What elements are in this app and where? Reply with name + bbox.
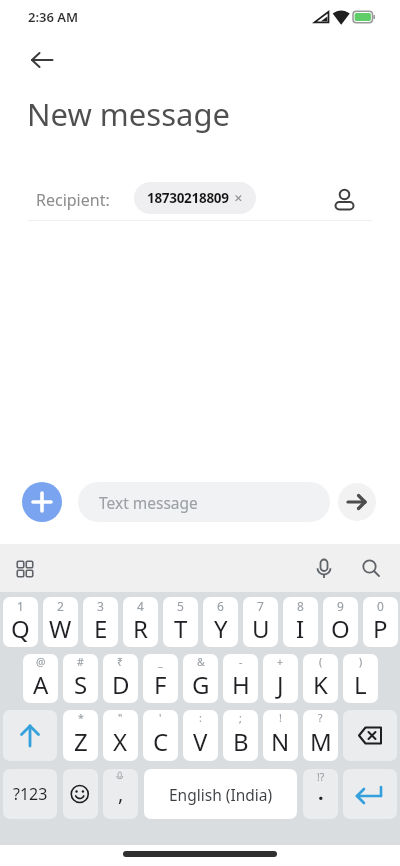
button[interactable]: [9, 553, 41, 585]
staticText: (: [319, 655, 323, 669]
button[interactable]: :: [183, 710, 218, 761]
staticText: S: [74, 668, 88, 701]
button[interactable]: ;: [223, 710, 258, 761]
staticText: ?123: [13, 783, 48, 805]
button[interactable]: ): [343, 654, 378, 703]
staticText: !?: [317, 770, 325, 784]
button[interactable]: [22, 40, 62, 80]
button[interactable]: @: [23, 654, 58, 703]
button[interactable]: ?123: [3, 769, 57, 819]
button[interactable]: 8: [283, 597, 318, 647]
staticText: 0: [377, 598, 384, 614]
staticText: H: [232, 668, 250, 701]
staticText: ;: [239, 711, 242, 725]
button[interactable]: ,: [103, 769, 138, 819]
staticText: L: [354, 668, 367, 701]
button[interactable]: [343, 769, 397, 819]
staticText: ,: [118, 780, 124, 807]
staticText: 1: [17, 598, 24, 614]
button[interactable]: _: [143, 654, 178, 703]
staticText: Q: [11, 612, 30, 645]
staticText: A: [33, 668, 49, 701]
button[interactable]: 5: [163, 597, 198, 647]
button[interactable]: 3: [83, 597, 118, 647]
staticText: M: [310, 725, 332, 758]
button[interactable]: [355, 553, 387, 585]
button[interactable]: 7: [243, 597, 278, 647]
button[interactable]: 2: [43, 597, 78, 647]
staticText: Z: [74, 725, 88, 758]
staticText: T: [174, 612, 188, 645]
staticText: @: [36, 655, 46, 669]
button[interactable]: [63, 769, 98, 819]
button[interactable]: (: [303, 654, 338, 703]
button[interactable]: [331, 181, 359, 209]
staticText: G: [192, 668, 210, 701]
staticText: F: [154, 668, 167, 701]
button[interactable]: #: [63, 654, 98, 703]
button[interactable]: [3, 710, 57, 761]
staticText: ": [118, 711, 123, 725]
button[interactable]: [343, 710, 397, 761]
staticText: R: [133, 612, 148, 645]
staticText: ✕: [234, 192, 243, 204]
staticText: O: [331, 612, 350, 645]
staticText: C: [153, 725, 169, 758]
button[interactable]: &: [183, 654, 218, 703]
staticText: D: [112, 668, 130, 701]
staticText: -: [239, 655, 243, 669]
staticText: :: [199, 711, 202, 725]
staticText: I: [296, 612, 305, 645]
staticText: 5: [177, 598, 184, 614]
button[interactable]: 6: [203, 597, 238, 647]
staticText: E: [94, 612, 108, 645]
staticText: .: [318, 779, 324, 806]
button[interactable]: !: [263, 710, 298, 761]
staticText: J: [277, 668, 284, 701]
button[interactable]: 4: [123, 597, 158, 647]
button[interactable]: [308, 553, 340, 585]
staticText: Y: [214, 612, 228, 645]
staticText: 9: [337, 598, 344, 614]
staticText: 2:36 AM: [28, 8, 79, 26]
staticText: W: [49, 612, 72, 645]
staticText: ₹: [117, 655, 124, 669]
staticText: B: [233, 725, 249, 758]
staticText: Text message: [99, 492, 198, 513]
staticText: 7: [257, 598, 264, 614]
staticText: !: [279, 711, 282, 725]
staticText: English (India): [169, 784, 273, 805]
button[interactable]: Text message: [78, 482, 330, 522]
staticText: 8: [297, 598, 304, 614]
staticText: _: [158, 655, 163, 669]
staticText: &: [197, 655, 205, 669]
button[interactable]: ": [103, 710, 138, 761]
button[interactable]: 0: [363, 597, 398, 647]
button[interactable]: *: [63, 710, 98, 761]
button[interactable]: [338, 483, 376, 521]
staticText: 2: [57, 598, 64, 614]
staticText: ?: [318, 711, 323, 725]
staticText: X: [113, 725, 128, 758]
button[interactable]: ?: [303, 710, 338, 761]
button[interactable]: -: [223, 654, 258, 703]
staticText: ': [159, 711, 162, 725]
staticText: 3: [97, 598, 104, 614]
button[interactable]: +: [263, 654, 298, 703]
button[interactable]: English (India): [144, 769, 297, 819]
staticText: K: [313, 668, 328, 701]
button[interactable]: 9: [323, 597, 358, 647]
staticText: ): [359, 655, 363, 669]
staticText: 4: [137, 598, 144, 614]
button[interactable]: ₹: [103, 654, 138, 703]
button[interactable]: !?: [303, 769, 338, 819]
button[interactable]: 18730218809: [134, 182, 256, 214]
staticText: P: [373, 612, 388, 645]
staticText: +: [277, 655, 284, 669]
button[interactable]: 1: [3, 597, 38, 647]
staticText: 18730218809: [147, 189, 229, 207]
button[interactable]: [22, 482, 62, 522]
staticText: N: [271, 725, 290, 758]
staticText: 6: [217, 598, 224, 614]
button[interactable]: ': [143, 710, 178, 761]
